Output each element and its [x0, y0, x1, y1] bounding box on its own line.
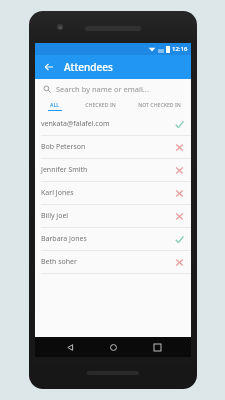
button[interactable]: venkata@falafel.com	[35, 113, 191, 136]
staticText: Bob Peterson	[41, 142, 86, 152]
staticText: Jennifer Smith	[41, 165, 88, 175]
button[interactable]: Recent apps	[148, 338, 166, 356]
button[interactable]: Jennifer Smith	[35, 159, 191, 182]
button[interactable]: Karl Jones	[35, 182, 191, 205]
staticText: Karl Jones	[41, 188, 74, 198]
button[interactable]: Billy joel	[35, 205, 191, 228]
staticText: Beth soher	[41, 257, 77, 267]
staticText: Search by name or email...	[56, 84, 149, 94]
other: Not checked in	[174, 188, 185, 199]
other: Not checked in	[174, 142, 185, 153]
button[interactable]: Back	[61, 338, 79, 356]
button[interactable]: NOT CHECKED IN	[127, 99, 191, 112]
staticText: 12:16	[172, 45, 188, 53]
button[interactable]: CHECKED IN	[74, 99, 127, 112]
other: Not checked in	[174, 211, 185, 222]
staticText: Barbara Jones	[41, 234, 87, 244]
other: Checked in	[174, 119, 185, 130]
staticText: Attendees	[64, 60, 113, 74]
other: Search	[43, 85, 51, 93]
button[interactable]: ALL	[35, 99, 74, 112]
button[interactable]: Beth soher	[35, 251, 191, 274]
staticText: CHECKED IN	[85, 101, 116, 108]
button[interactable]: Home	[104, 338, 122, 356]
button[interactable]: Back	[41, 59, 57, 75]
button[interactable]: Bob Peterson	[35, 136, 191, 159]
other: Checked in	[174, 234, 185, 245]
staticText: venkata@falafel.com	[41, 119, 110, 129]
other: Not checked in	[174, 257, 185, 268]
button[interactable]: Search	[35, 79, 191, 99]
staticText: ALL	[50, 101, 59, 108]
button[interactable]: Barbara Jones	[35, 228, 191, 251]
other: Not checked in	[174, 165, 185, 176]
staticText: Billy joel	[41, 211, 69, 221]
staticText: NOT CHECKED IN	[138, 101, 181, 108]
